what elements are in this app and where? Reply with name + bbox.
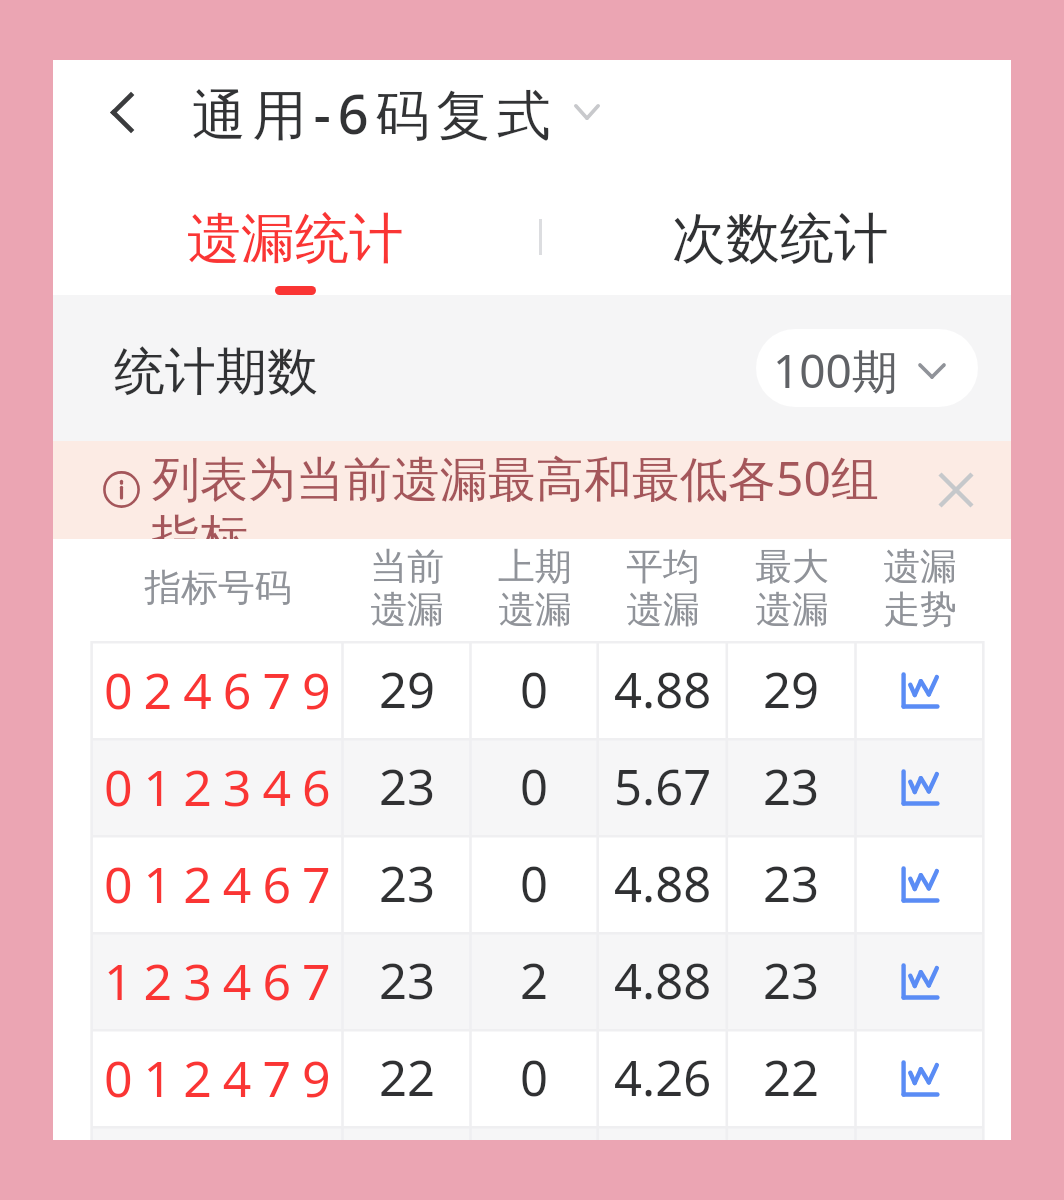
staticText: 23	[379, 753, 436, 820]
staticText: 遗漏 走势	[883, 544, 957, 633]
staticText: 0	[520, 656, 549, 723]
staticText: 平均 遗漏	[626, 544, 700, 633]
staticText: 0	[520, 850, 549, 917]
staticText: 2	[520, 947, 549, 1014]
staticText: 23	[763, 947, 820, 1014]
staticText: 当前 遗漏	[370, 544, 444, 633]
staticText: 23	[763, 753, 820, 820]
staticText: 012467	[104, 850, 342, 918]
button[interactable]: Trend chart	[896, 957, 944, 1005]
staticText: 100期	[773, 339, 898, 402]
staticText: 024679	[104, 656, 342, 724]
staticText: 5.67	[614, 753, 712, 820]
staticText: 29	[763, 656, 820, 723]
staticText: 29	[379, 656, 436, 723]
staticText: 012346	[104, 753, 342, 821]
staticText: 22	[379, 1044, 436, 1111]
staticText: 123467	[104, 947, 342, 1015]
staticText: 通用-6码复式	[192, 76, 558, 150]
staticText: 4.88	[614, 656, 712, 723]
button[interactable]: Trend chart	[896, 860, 944, 908]
button[interactable]: Back	[90, 81, 153, 144]
button[interactable]: Trend chart	[896, 1054, 944, 1102]
staticText: 4.26	[614, 1044, 712, 1111]
button[interactable]: 遗漏统计	[158, 172, 431, 295]
staticText: 遗漏统计	[187, 205, 403, 273]
staticText: 23	[763, 850, 820, 917]
staticText: 0	[520, 1044, 549, 1111]
button[interactable]: 次数统计	[643, 172, 916, 295]
staticText: 4.88	[614, 947, 712, 1014]
staticText: 0	[520, 753, 549, 820]
staticText: 23	[379, 947, 436, 1014]
button[interactable]: Trend chart	[896, 666, 944, 714]
button[interactable]: Trend chart	[896, 763, 944, 811]
staticText: 列表为当前遗漏最高和最低各50组指标	[152, 445, 902, 539]
staticText: 上期 遗漏	[498, 544, 572, 633]
staticText: 统计期数	[114, 340, 318, 404]
button[interactable]: 100期	[756, 329, 978, 407]
button[interactable]: 通用-6码复式	[173, 68, 673, 164]
staticText: 23	[379, 850, 436, 917]
staticText: 最大 遗漏	[755, 544, 829, 633]
staticText: 4.88	[614, 850, 712, 917]
staticText: 指标号码	[144, 565, 292, 611]
staticText: 22	[763, 1044, 820, 1111]
staticText: 012479	[104, 1044, 342, 1112]
button[interactable]: Close	[928, 462, 984, 518]
staticText: 次数统计	[672, 205, 888, 273]
